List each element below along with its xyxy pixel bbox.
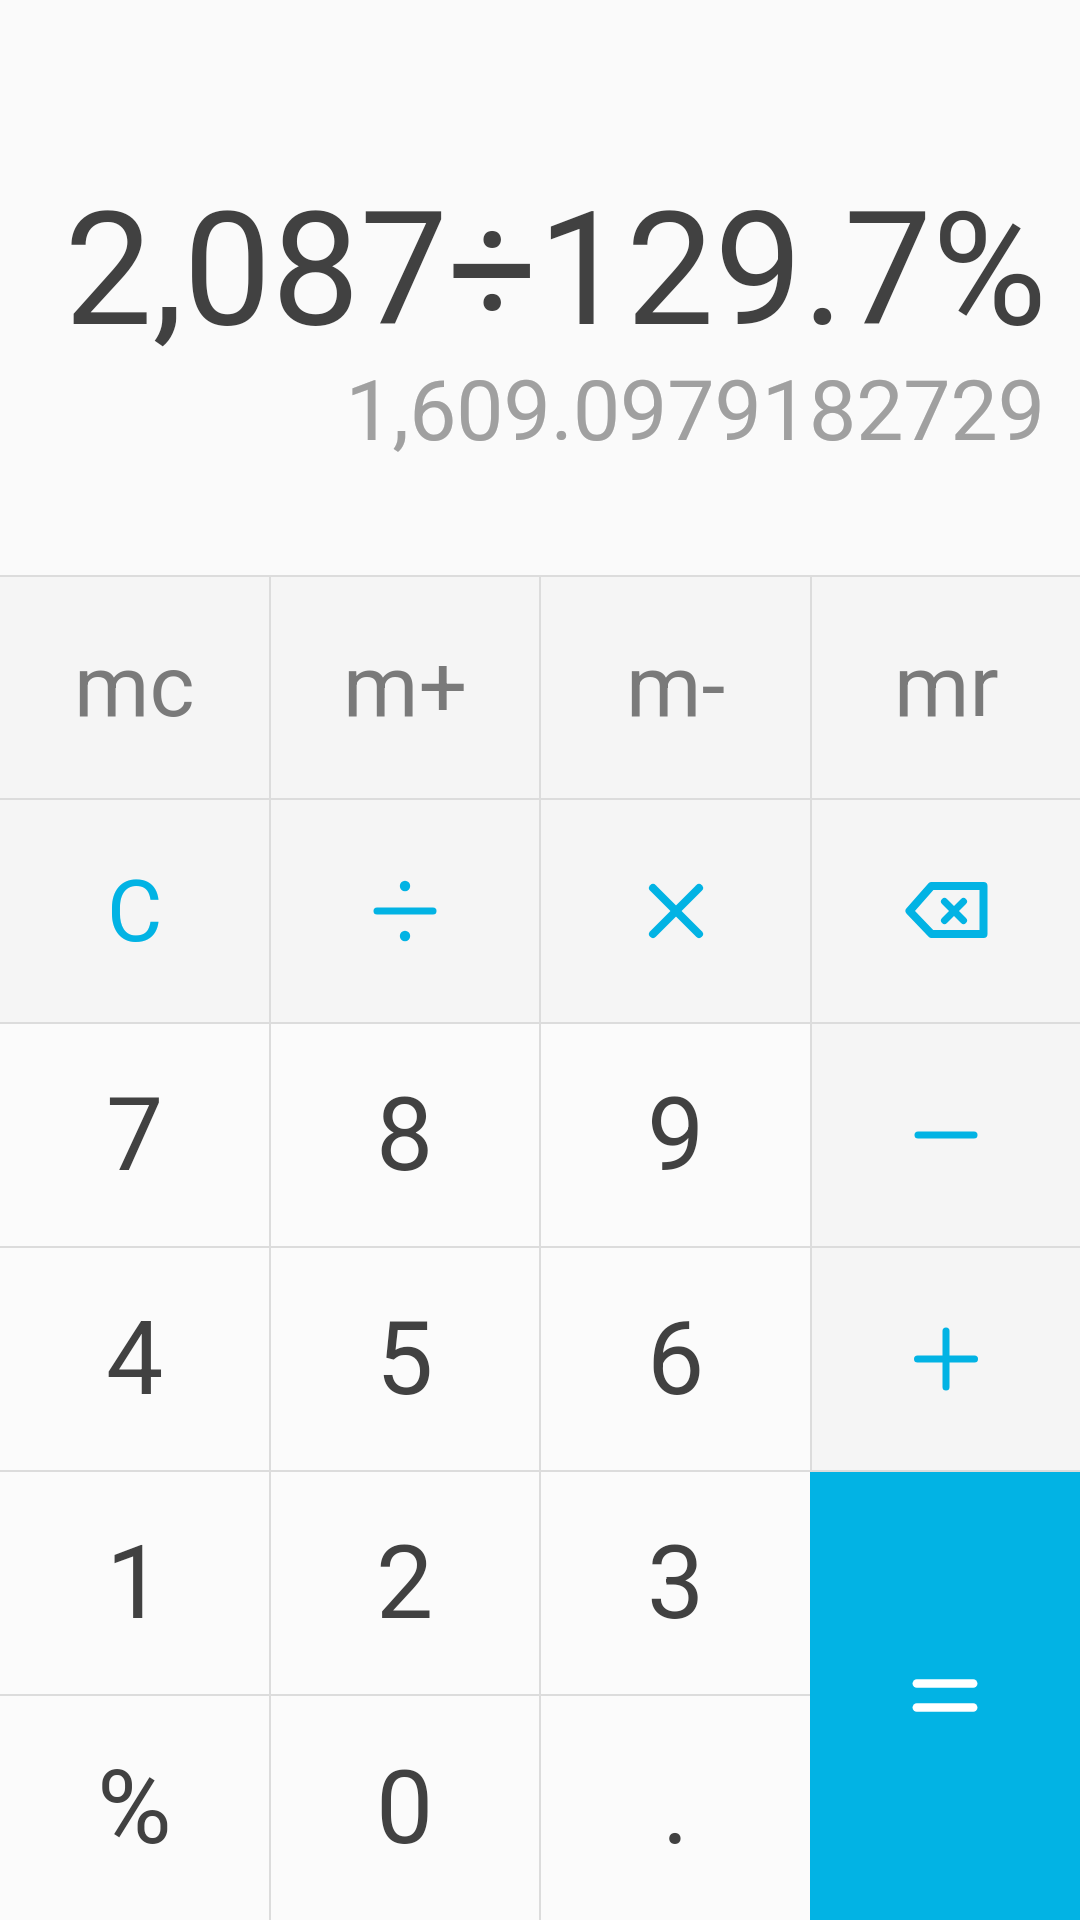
staticText: mc <box>74 636 195 737</box>
staticText: 3 <box>647 1523 705 1643</box>
button[interactable]: Backspace <box>812 800 1080 1022</box>
button[interactable]: . <box>541 1696 810 1920</box>
staticText: 7 <box>106 1075 164 1195</box>
button[interactable]: 4 <box>0 1248 269 1470</box>
staticText: 8 <box>376 1075 434 1195</box>
staticText: mr <box>894 636 999 737</box>
button[interactable]: 7 <box>0 1024 269 1246</box>
button[interactable]: 2 <box>271 1472 539 1694</box>
staticText: C <box>107 862 163 962</box>
staticText: 5 <box>376 1299 434 1419</box>
button[interactable]: Divide <box>271 800 539 1022</box>
button[interactable]: 6 <box>541 1248 810 1470</box>
button[interactable]: 3 <box>541 1472 810 1694</box>
button[interactable]: C <box>0 800 269 1022</box>
staticText: 4 <box>106 1299 164 1419</box>
button[interactable]: 0 <box>271 1696 539 1920</box>
button[interactable]: 9 <box>541 1024 810 1246</box>
button[interactable]: 8 <box>271 1024 539 1246</box>
button[interactable]: Minus <box>812 1024 1080 1246</box>
button[interactable]: 1 <box>0 1472 269 1694</box>
button[interactable]: mc <box>0 577 269 798</box>
button[interactable]: mr <box>812 577 1080 798</box>
staticText: 6 <box>647 1299 705 1419</box>
staticText: 1 <box>106 1523 164 1643</box>
staticText: 0 <box>376 1748 434 1868</box>
staticText: m- <box>626 636 726 737</box>
button[interactable]: Multiply <box>541 800 810 1022</box>
staticText: 1,609.0979182729 <box>345 362 1045 460</box>
staticText: 2 <box>376 1523 434 1643</box>
button[interactable]: Equals <box>810 1472 1080 1920</box>
staticText: 9 <box>647 1075 705 1195</box>
button[interactable]: % <box>0 1696 269 1920</box>
staticText: . <box>662 1748 689 1868</box>
button[interactable]: Plus <box>812 1248 1080 1470</box>
button[interactable]: 5 <box>271 1248 539 1470</box>
staticText: 2,087÷129.7% <box>64 178 1047 362</box>
staticText: m+ <box>343 636 468 737</box>
button[interactable]: m- <box>541 577 810 798</box>
staticText: % <box>97 1748 172 1868</box>
button[interactable]: m+ <box>271 577 539 798</box>
